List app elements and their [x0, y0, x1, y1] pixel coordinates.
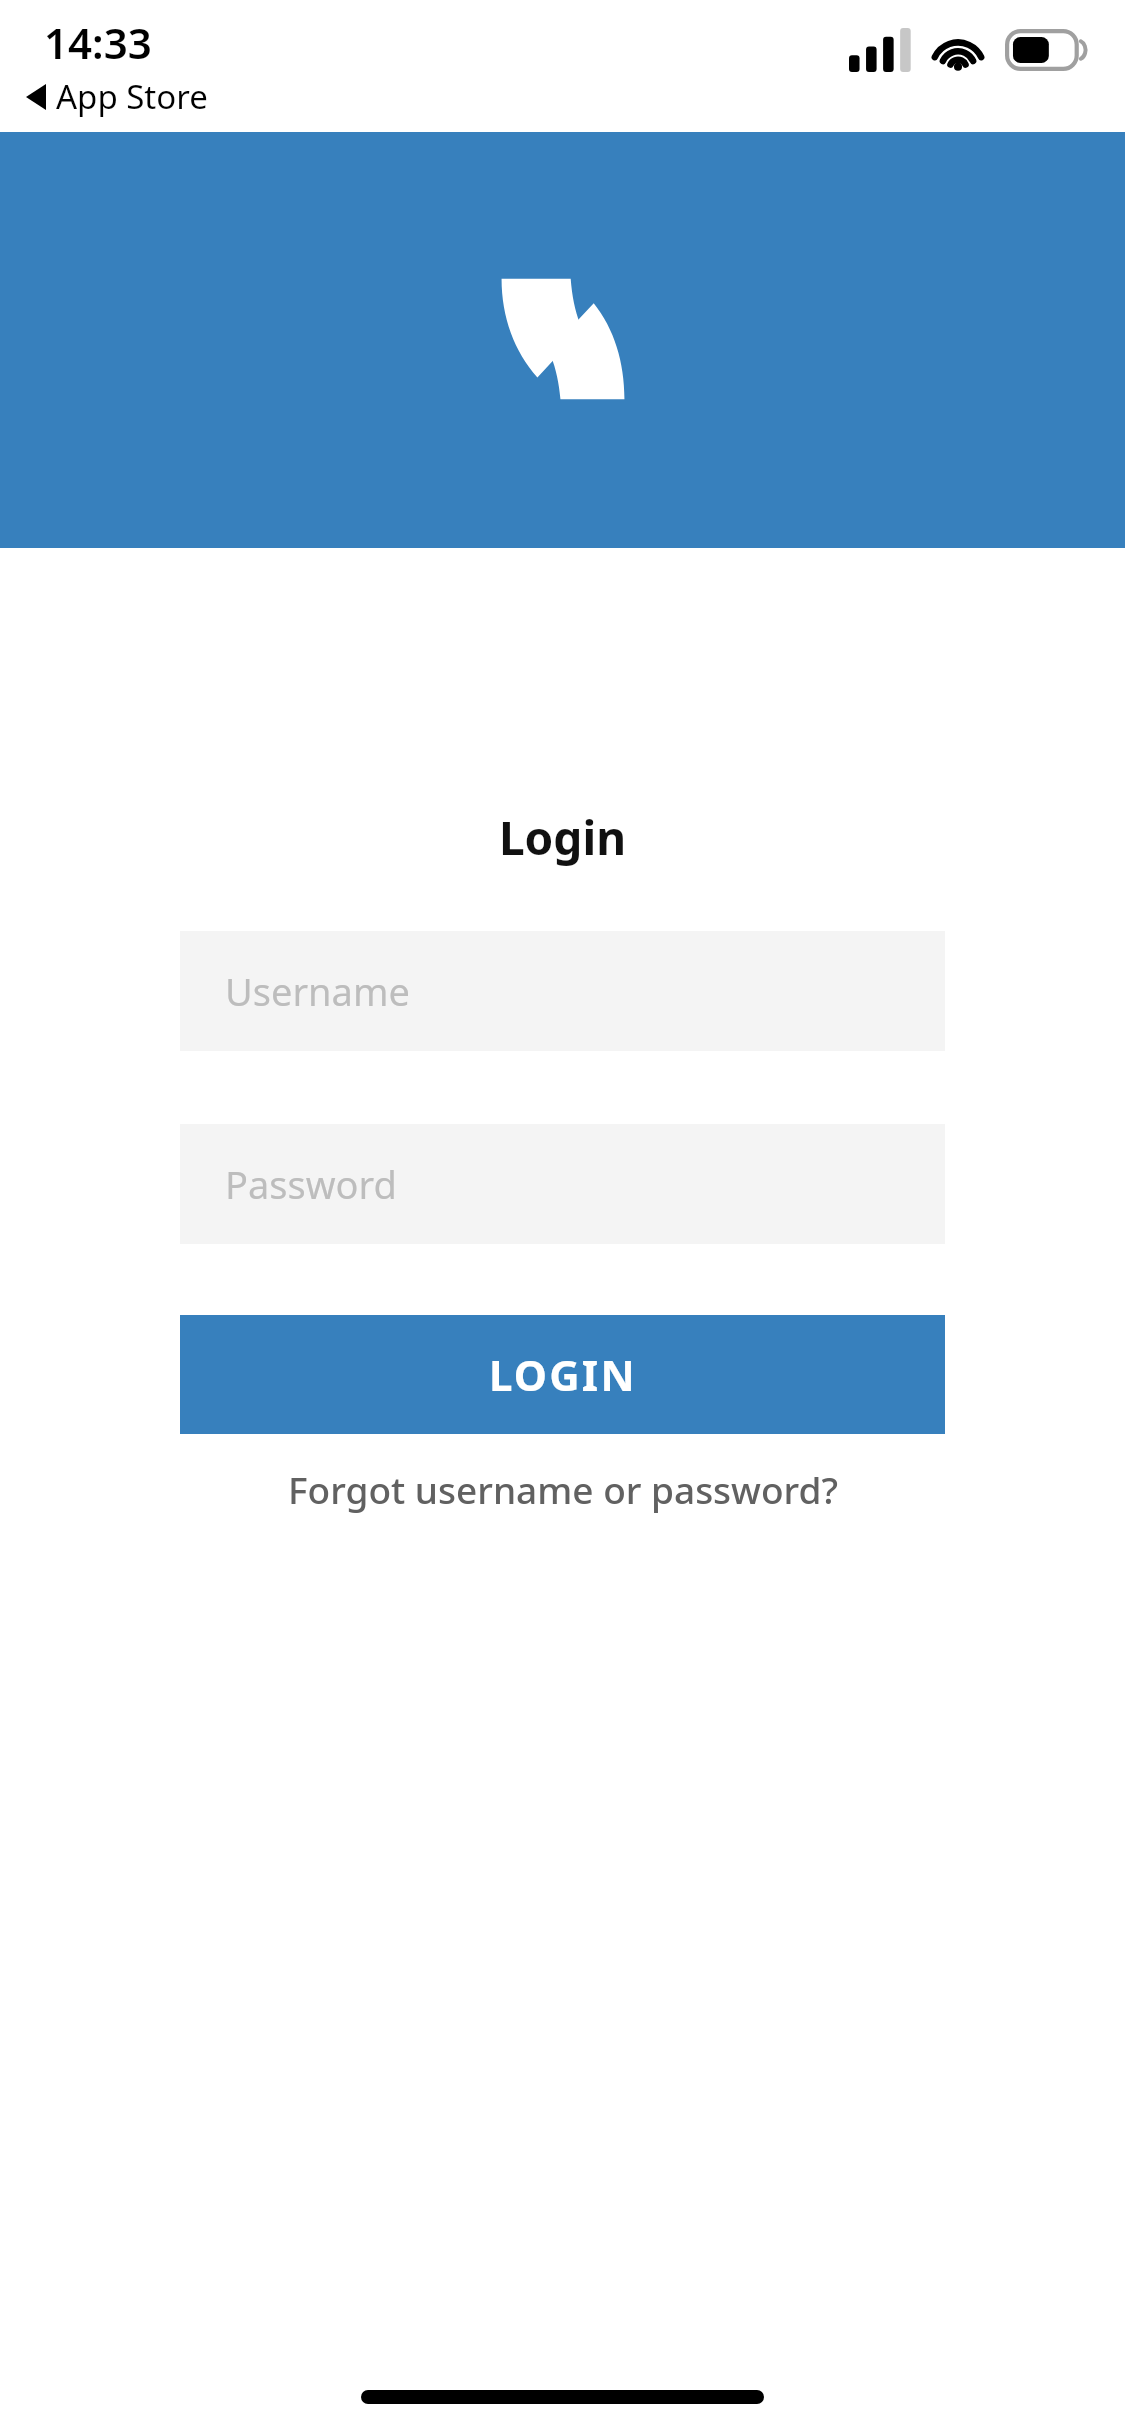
- other: App logo: [499, 275, 627, 403]
- other: Wi-Fi: [929, 29, 987, 71]
- staticText: Forgot username or password?: [288, 1464, 838, 1514]
- staticText: LOGIN: [489, 1346, 637, 1403]
- staticText: App Store: [56, 74, 208, 119]
- button[interactable]: Forgot username or password?: [0, 1450, 1125, 1528]
- button[interactable]: LOGIN: [180, 1315, 945, 1434]
- staticText: Password: [225, 1158, 397, 1210]
- other: Cellular signal: [849, 28, 911, 72]
- staticText: Username: [225, 965, 410, 1017]
- button[interactable]: Password: [180, 1124, 945, 1244]
- button[interactable]: Username: [180, 931, 945, 1051]
- staticText: Login: [0, 806, 1125, 869]
- other: Battery: [1005, 29, 1087, 71]
- staticText: 14:33: [44, 14, 152, 71]
